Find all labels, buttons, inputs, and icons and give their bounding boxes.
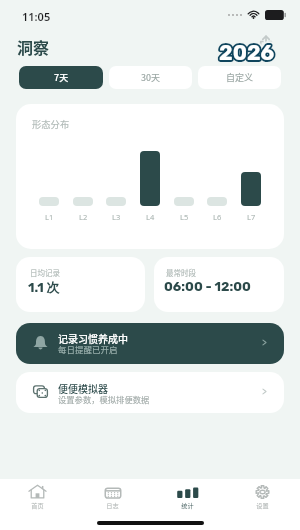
staticText: 2026: [219, 40, 275, 65]
staticText: 便便模拟器: [58, 381, 108, 395]
staticText: 形态分布: [32, 117, 70, 130]
staticText: 2026: [219, 40, 275, 65]
staticText: L5: [180, 212, 189, 222]
staticText: L4: [146, 212, 155, 222]
staticText: 2026: [219, 40, 275, 65]
button[interactable]: 自定义: [198, 66, 281, 89]
staticText: 1.1 次: [28, 279, 60, 295]
staticText: 首页: [31, 501, 44, 510]
staticText: 11:05: [22, 9, 51, 24]
staticText: 7天: [54, 71, 69, 84]
staticText: 记录习惯养成中: [58, 331, 128, 345]
staticText: 洞察: [17, 35, 50, 58]
staticText: L7: [247, 212, 256, 222]
staticText: 30天: [141, 71, 160, 84]
button[interactable]: 30天: [109, 66, 192, 89]
staticText: 设置: [256, 501, 269, 510]
button[interactable]: 记录习惯养成中: [16, 323, 284, 364]
staticText: L2: [79, 212, 88, 222]
button[interactable]: Stats: [150, 479, 225, 530]
button[interactable]: Settings: [225, 479, 300, 530]
button[interactable]: 便便模拟器: [16, 372, 284, 413]
staticText: 统计: [181, 501, 194, 510]
staticText: 06:00 - 12:00: [164, 279, 251, 294]
staticText: 设置参数，模拟排便数据: [58, 393, 150, 405]
button[interactable]: 最常时段: [154, 257, 284, 312]
staticText: L3: [112, 212, 121, 222]
button[interactable]: 日均记录: [16, 257, 145, 312]
button[interactable]: Log: [75, 479, 150, 530]
staticText: 日志: [106, 501, 119, 510]
staticText: L1: [45, 212, 54, 222]
staticText: 自定义: [226, 71, 254, 84]
staticText: L6: [213, 212, 222, 222]
button[interactable]: Home: [0, 479, 75, 530]
staticText: 日均记录: [30, 267, 60, 278]
button[interactable]: 7天: [19, 66, 103, 89]
staticText: 最常时段: [166, 267, 196, 278]
staticText: 每日提醒已开启: [58, 343, 118, 355]
